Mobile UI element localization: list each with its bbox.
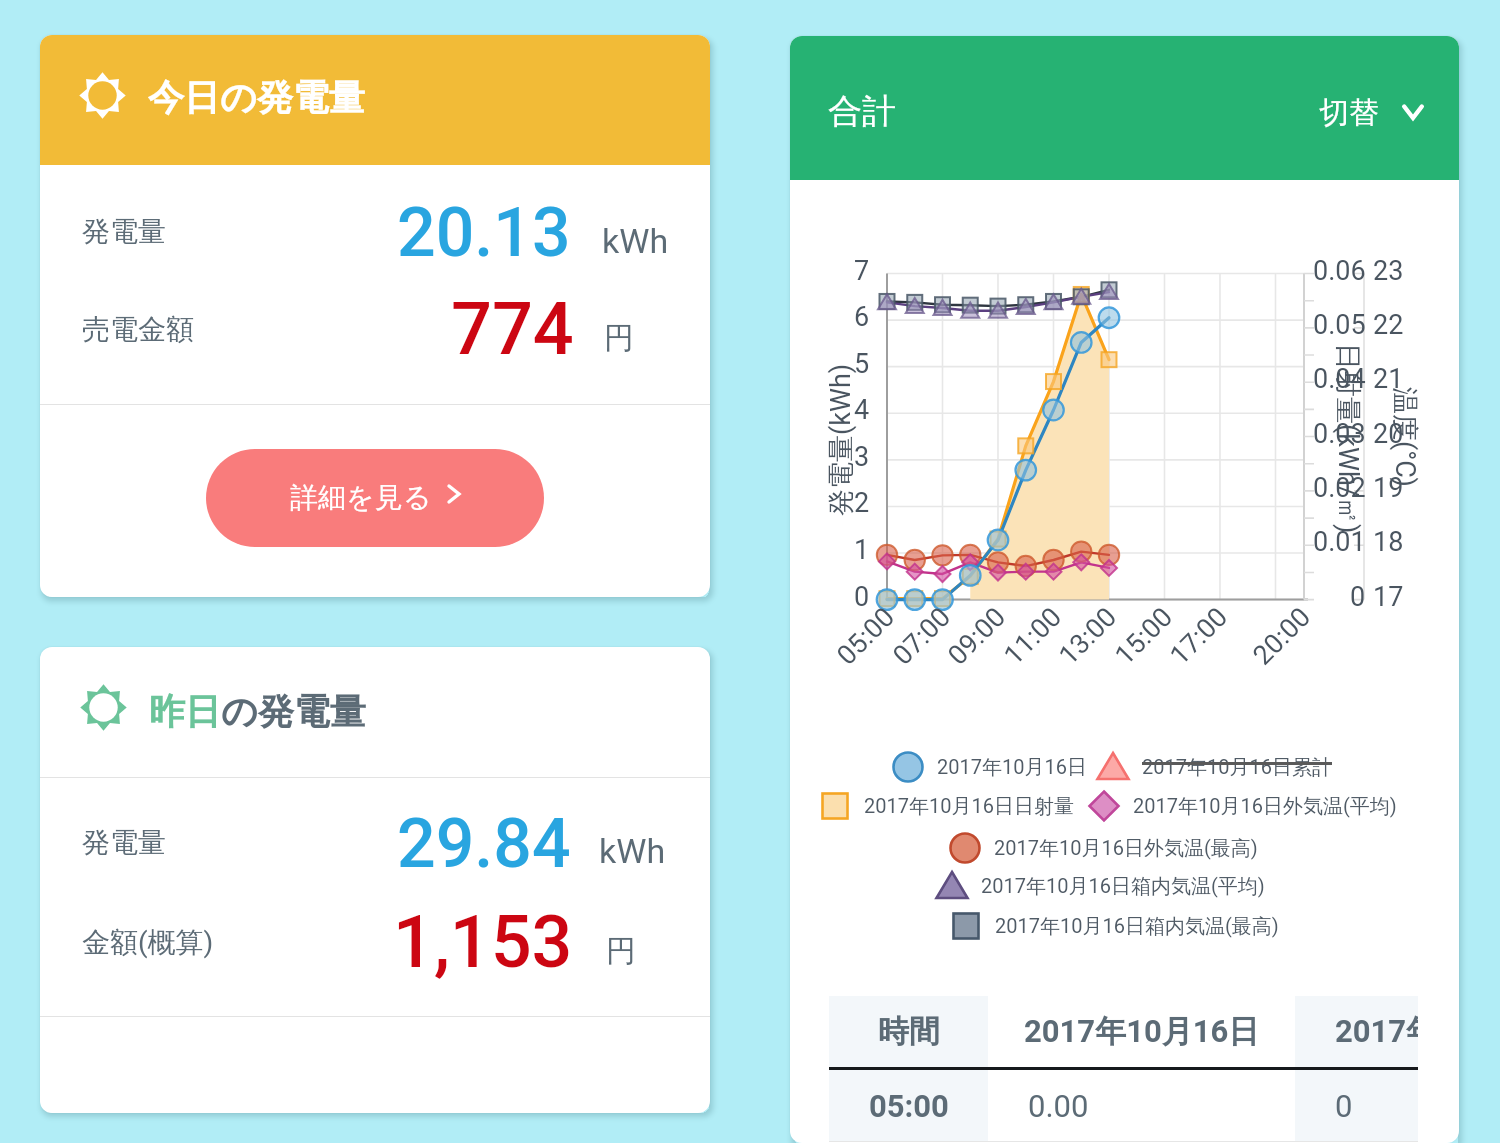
staticText: 0.06 bbox=[1313, 255, 1366, 287]
staticText: の発電量 bbox=[221, 689, 366, 734]
staticText: 29.84 bbox=[397, 804, 571, 884]
staticText: 22 bbox=[1373, 309, 1404, 341]
staticText: 1 bbox=[854, 534, 870, 566]
staticText: 07:00 bbox=[887, 601, 957, 671]
staticText: 20:00 bbox=[1247, 601, 1317, 671]
staticText: 17 bbox=[1373, 581, 1404, 613]
other: Switch displayed series bbox=[1402, 103, 1428, 123]
staticText: 温度(°C) bbox=[1388, 387, 1422, 487]
staticText: 05:00 bbox=[869, 1088, 949, 1124]
staticText: 0.05 bbox=[1313, 309, 1366, 341]
staticText: 円 bbox=[606, 932, 636, 970]
staticText: 2 bbox=[854, 487, 870, 519]
button[interactable]: 切替 bbox=[1319, 77, 1428, 149]
staticText: 21 bbox=[1373, 363, 1404, 395]
staticText: 詳細を見る bbox=[290, 480, 432, 515]
staticText: 0 bbox=[1350, 581, 1366, 613]
staticText: 11:00 bbox=[998, 601, 1068, 671]
staticText: 774 bbox=[451, 287, 574, 371]
staticText: 昨日 bbox=[149, 689, 221, 734]
staticText: 05:00 bbox=[831, 601, 901, 671]
staticText: 0 bbox=[854, 581, 870, 613]
staticText: 7 bbox=[854, 255, 870, 287]
staticText: 金額(概算) bbox=[82, 925, 214, 960]
staticText: 15:00 bbox=[1109, 601, 1179, 671]
staticText: 2017年10月16日箱内気温(最高) bbox=[995, 914, 1279, 939]
staticText: 発電量(kWh) bbox=[824, 363, 858, 516]
staticText: 0.02 bbox=[1313, 472, 1366, 504]
staticText: 4 bbox=[854, 394, 870, 426]
staticText: 0.04 bbox=[1313, 363, 1366, 395]
staticText: 0.00 bbox=[1028, 1088, 1089, 1124]
staticText: 2017年10月16日 bbox=[1024, 1012, 1260, 1051]
staticText: 2017年10月16日外気温(平均) bbox=[1133, 794, 1397, 819]
staticText: 2017年10月16日箱内気温(平均) bbox=[981, 874, 1265, 899]
staticText: 3 bbox=[854, 441, 870, 473]
staticText: 0.03 bbox=[1313, 418, 1366, 450]
staticText: 日射量(kWh/㎡) bbox=[1331, 343, 1365, 534]
staticText: 09:00 bbox=[942, 601, 1012, 671]
staticText: 20 bbox=[1373, 418, 1404, 450]
staticText: 6 bbox=[854, 301, 870, 333]
staticText: 1,153 bbox=[393, 900, 573, 984]
staticText: 円 bbox=[604, 319, 634, 357]
staticText: kWh bbox=[599, 831, 666, 871]
staticText: 23 bbox=[1373, 255, 1404, 287]
staticText: kWh bbox=[602, 221, 669, 261]
staticText: 2017年10月16日日射量 bbox=[864, 794, 1074, 819]
staticText: 売電金額 bbox=[82, 312, 194, 347]
staticText: 0.01 bbox=[1313, 526, 1366, 558]
staticText: 20.13 bbox=[397, 193, 571, 273]
staticText: 時間 bbox=[878, 1012, 940, 1051]
staticText: 合計 bbox=[828, 90, 896, 133]
button[interactable]: 詳細を見る bbox=[206, 449, 544, 547]
staticText: 0 bbox=[1335, 1088, 1353, 1124]
staticText: 2017年10月16日累計 bbox=[1142, 755, 1332, 780]
staticText: 発電量 bbox=[82, 214, 166, 249]
staticText: 17:00 bbox=[1164, 601, 1234, 671]
staticText: 18 bbox=[1373, 526, 1404, 558]
staticText: 2017年10月16日 bbox=[937, 755, 1087, 780]
staticText: 2017年10月16日外気温(最高) bbox=[994, 836, 1258, 861]
staticText: 今日の発電量 bbox=[148, 75, 365, 120]
staticText: 19 bbox=[1373, 472, 1404, 504]
staticText: 5 bbox=[854, 348, 870, 380]
staticText: 13:00 bbox=[1053, 601, 1123, 671]
staticText: 発電量 bbox=[82, 825, 166, 860]
staticText: 2017年10月17日 bbox=[1335, 1012, 1418, 1051]
staticText: 切替 bbox=[1319, 94, 1379, 132]
